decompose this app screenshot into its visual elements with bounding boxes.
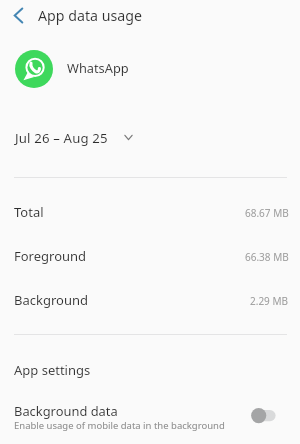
staticText: Total bbox=[14, 203, 44, 221]
button[interactable]: Background data toggle bbox=[246, 404, 282, 428]
button[interactable]: WhatsApp bbox=[0, 46, 300, 94]
staticText: 68.67 MB bbox=[245, 206, 289, 220]
button[interactable]: Background data bbox=[0, 398, 300, 444]
staticText: Background data bbox=[14, 402, 118, 420]
staticText: Enable usage of mobile data in the backg… bbox=[14, 419, 225, 432]
staticText: App settings bbox=[14, 361, 91, 379]
staticText: 2.29 MB bbox=[250, 294, 289, 308]
button[interactable]: Jul 26 – Aug 25 bbox=[0, 126, 300, 152]
staticText: Jul 26 – Aug 25 bbox=[15, 129, 108, 147]
button[interactable]: Foreground bbox=[0, 234, 300, 278]
staticText: Foreground bbox=[14, 247, 87, 265]
staticText: Background bbox=[14, 291, 88, 309]
staticText: App data usage bbox=[38, 6, 142, 25]
button[interactable]: Total bbox=[0, 190, 300, 234]
staticText: WhatsApp bbox=[67, 59, 129, 76]
staticText: 66.38 MB bbox=[245, 250, 289, 264]
button[interactable]: Back bbox=[0, 1, 28, 29]
button[interactable]: Background bbox=[0, 278, 300, 322]
